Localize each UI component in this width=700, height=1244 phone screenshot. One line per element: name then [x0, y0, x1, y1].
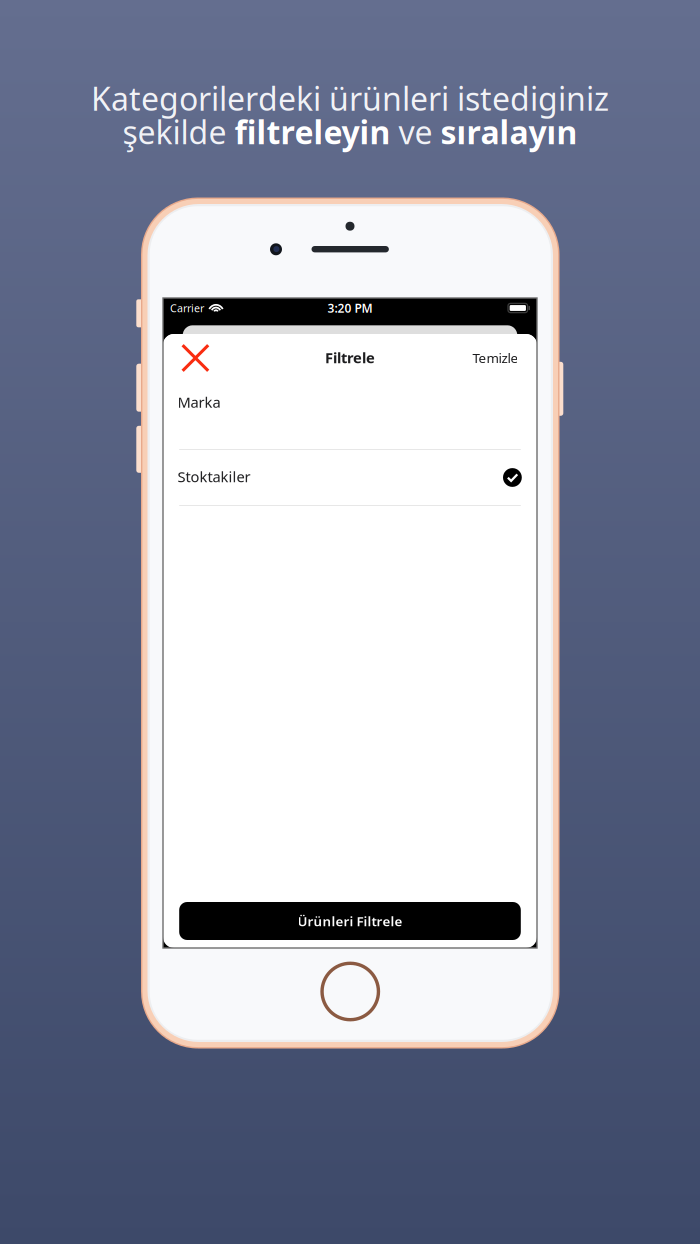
button[interactable]: Kapat [173, 334, 217, 380]
staticText: Stoktakiler [178, 467, 251, 486]
staticText: Filtrele [325, 348, 375, 367]
staticText: Ürünleri Filtrele [297, 912, 402, 930]
staticText: filtreleyin [234, 110, 390, 153]
button[interactable]: Ürünleri Filtrele [179, 902, 521, 940]
staticText: Carrier [170, 301, 204, 315]
staticText: ve [390, 110, 440, 153]
staticText: şekilde [122, 110, 234, 153]
staticText: sıralayın [440, 110, 577, 153]
staticText: 3:20 PM [327, 300, 372, 316]
staticText: Marka [178, 392, 221, 412]
button[interactable]: Temizle [464, 334, 526, 380]
button[interactable]: Stoktakiler [163, 450, 537, 505]
staticText: Kategorilerdeki ürünleri istediginiz [91, 77, 609, 119]
button[interactable]: Marka [163, 380, 537, 449]
staticText: Temizle [472, 349, 518, 367]
